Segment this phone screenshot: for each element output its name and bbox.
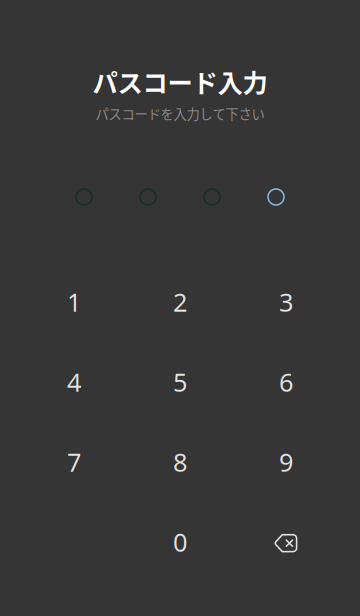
button[interactable]: 5 [127, 342, 233, 422]
staticText: 0 [173, 525, 187, 559]
button[interactable]: 9 [233, 422, 339, 502]
button[interactable]: 6 [233, 342, 339, 422]
staticText: 8 [173, 445, 187, 479]
button[interactable]: 8 [127, 422, 233, 502]
staticText: パスコード入力 [92, 63, 267, 100]
staticText: 1 [67, 285, 81, 319]
staticText: 3 [279, 285, 293, 319]
staticText: 4 [67, 365, 81, 399]
button[interactable]: 4 [21, 342, 127, 422]
button[interactable]: 2 [127, 262, 233, 342]
button[interactable]: 7 [21, 422, 127, 502]
button[interactable]: 1 [21, 262, 127, 342]
button[interactable]: Delete [233, 502, 339, 582]
staticText: 6 [279, 365, 293, 399]
button[interactable]: 0 [127, 502, 233, 582]
staticText: 5 [173, 365, 187, 399]
staticText: 9 [279, 445, 293, 479]
button[interactable]: 3 [233, 262, 339, 342]
staticText: 7 [67, 445, 81, 479]
staticText: パスコードを入力して下さい [95, 104, 264, 123]
staticText: 2 [173, 285, 187, 319]
